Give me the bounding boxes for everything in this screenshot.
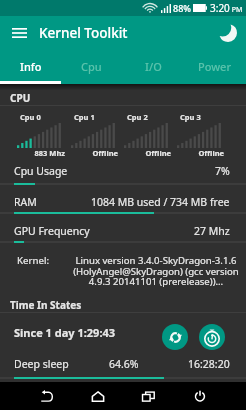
button[interactable]: Kernel: (0, 249, 246, 288)
button[interactable]: I/O (122, 50, 184, 84)
staticText: I/O (145, 59, 162, 74)
staticText: Since 1 day 1:29:43 (14, 325, 116, 340)
staticText: CPU (10, 91, 31, 105)
button[interactable]: Open navigation menu (0, 16, 39, 50)
button[interactable]: Refresh (162, 324, 188, 350)
staticText: GPU Frequency (14, 224, 90, 238)
staticText: Cpu (81, 59, 102, 74)
button[interactable]: Power (184, 50, 246, 84)
staticText: 883 Mhz (13, 148, 65, 158)
staticText: Time In States (10, 298, 82, 312)
button[interactable]: Cpu 0 (13, 106, 67, 159)
button[interactable]: Recent apps (128, 382, 168, 410)
button[interactable]: Cpu 1 (67, 106, 120, 159)
button[interactable]: Back (27, 382, 67, 410)
button[interactable]: Cpu (61, 50, 122, 84)
button[interactable]: Home (78, 382, 118, 410)
staticText: PM (230, 5, 243, 15)
staticText: Info (20, 59, 42, 74)
button[interactable]: Info (0, 50, 61, 84)
button[interactable]: Cpu 2 (120, 106, 173, 159)
button[interactable]: RAM (0, 191, 246, 220)
staticText: Cpu 2 (127, 112, 148, 122)
staticText: Cpu Usage (14, 164, 68, 178)
button[interactable]: Cpu 3 (173, 106, 226, 159)
staticText: Offline (120, 148, 171, 158)
staticText: 16:28:20 (188, 357, 230, 371)
staticText: Power (198, 59, 232, 74)
button[interactable]: Cpu Usage (0, 159, 246, 191)
staticText: Deep sleep (14, 357, 69, 371)
staticText: Kernel Toolkit (39, 24, 128, 42)
staticText: Cpu 0 (20, 112, 41, 122)
button[interactable]: Deep sleep (0, 357, 246, 379)
staticText: 7% (215, 164, 230, 178)
button[interactable]: Toggle night mode (212, 16, 246, 50)
staticText: Cpu 1 (74, 112, 95, 122)
staticText: Cpu 3 (180, 112, 201, 122)
staticText: Kernel: (17, 254, 50, 267)
staticText: 1084 MB used / 734 MB free (91, 195, 230, 209)
staticText: 27 Mhz (194, 224, 230, 238)
button[interactable]: GPU Frequency (0, 220, 246, 249)
staticText: RAM (14, 195, 37, 209)
staticText: Offline (67, 148, 118, 158)
staticText: 3:20 (210, 1, 230, 15)
staticText: Linux version 3.4.0-SkyDragon-3.1.6 (Hol… (70, 254, 242, 288)
staticText: 64.6% (109, 357, 139, 371)
button[interactable]: Reset timers (199, 324, 225, 350)
staticText: 88% (173, 2, 191, 14)
button[interactable]: Power (180, 382, 220, 410)
staticText: Offline (173, 148, 224, 158)
